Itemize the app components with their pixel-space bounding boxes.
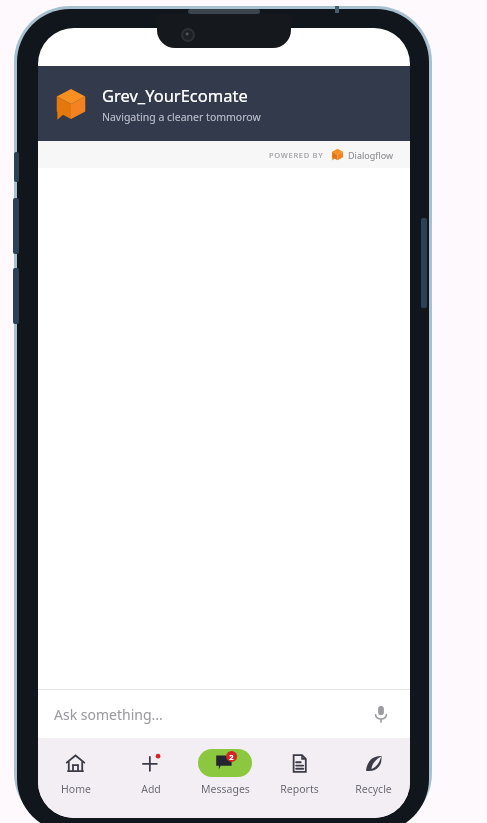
staticText: Ask something...: [54, 705, 368, 724]
staticText: 2: [226, 752, 237, 762]
staticText: Grev_YourEcomate: [102, 84, 248, 106]
button[interactable]: Add: [113, 738, 188, 796]
staticText: Navigating a cleaner tommorow: [102, 110, 261, 124]
button[interactable]: Home: [38, 738, 113, 796]
button[interactable]: Voice input: [368, 701, 394, 727]
staticText: Add: [141, 782, 161, 796]
staticText: Dialogflow: [348, 149, 394, 161]
button[interactable]: Ask something...: [38, 690, 410, 738]
button[interactable]: Grev_YourEcomate: [38, 66, 410, 141]
button[interactable]: Recycle: [336, 738, 410, 796]
staticText: Reports: [280, 782, 319, 796]
staticText: Messages: [201, 782, 250, 796]
staticText: Recycle: [355, 782, 392, 796]
staticText: POWERED BY: [269, 150, 324, 160]
staticText: Home: [61, 782, 91, 796]
button[interactable]: 2: [188, 738, 262, 796]
button[interactable]: Reports: [262, 738, 336, 796]
